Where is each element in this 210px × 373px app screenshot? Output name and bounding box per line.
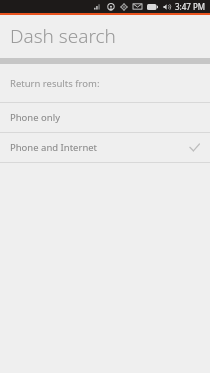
staticText: Phone only: [10, 111, 60, 124]
staticText: Return results from:: [10, 77, 100, 90]
button[interactable]: Phone only: [0, 103, 210, 132]
other: Selected: [189, 142, 200, 153]
staticText: Dash search: [10, 23, 116, 49]
staticText: 3:47 PM: [175, 1, 206, 12]
staticText: Phone and Internet: [10, 141, 98, 154]
button[interactable]: Phone and Internet: [0, 133, 210, 162]
